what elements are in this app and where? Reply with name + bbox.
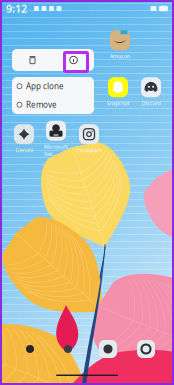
- staticText: Amazon: [110, 53, 130, 60]
- staticText: 9:12: [6, 1, 27, 16]
- staticText: Microsoft Swi…: [44, 143, 68, 157]
- button[interactable]: Gemini: [8, 124, 40, 154]
- button[interactable]: Remove: [12, 95, 94, 114]
- staticText: App clone: [26, 81, 64, 91]
- staticText: Remove: [26, 99, 57, 110]
- button[interactable]: Snapchat: [102, 77, 134, 107]
- button[interactable]: App info: [53, 49, 94, 71]
- button[interactable]: App: [99, 340, 117, 358]
- staticText: Instagram: [76, 147, 102, 154]
- button[interactable]: Amazon: [104, 30, 136, 60]
- button[interactable]: App: [20, 339, 40, 359]
- button[interactable]: Instagram: [73, 124, 105, 154]
- button[interactable]: Microsoft Swi…: [40, 124, 72, 154]
- button[interactable]: App clone: [12, 77, 94, 95]
- staticText: Gemini: [15, 147, 32, 154]
- button[interactable]: Discord: [135, 77, 167, 107]
- staticText: Snapchat: [106, 100, 129, 107]
- button[interactable]: Uninstall: [12, 49, 53, 71]
- staticText: Discord: [141, 100, 160, 107]
- button[interactable]: App: [137, 340, 155, 358]
- button[interactable]: App: [58, 339, 78, 359]
